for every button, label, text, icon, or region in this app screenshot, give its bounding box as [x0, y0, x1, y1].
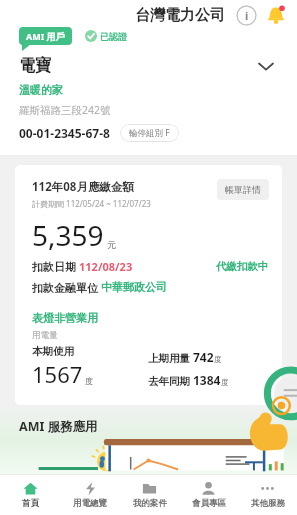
button[interactable]: 我的案件 [120, 475, 179, 515]
staticText: 溫暖的家 [19, 83, 63, 97]
staticText: AMI 服務應用 [19, 418, 98, 435]
button[interactable]: 帳單詳情 [225, 184, 261, 195]
staticText: 電寶 [19, 56, 51, 76]
staticText: 1384 [193, 372, 221, 388]
staticText: 計費期間 112/05/24 ~ 112/07/23 [32, 198, 151, 209]
staticText: 1567 [32, 359, 83, 389]
button[interactable]: 用電總覽 [60, 475, 120, 515]
button[interactable]: 首頁 [0, 475, 60, 515]
staticText: 中華郵政公司 [101, 280, 167, 294]
button[interactable]: 輪停組別 F [129, 127, 170, 139]
staticText: 112/08/23 [79, 259, 133, 274]
staticText: 度 [214, 355, 222, 364]
staticText: 我的案件 [133, 498, 167, 509]
staticText: 去年同期 [148, 374, 193, 388]
staticText: 扣款金融單位 [32, 280, 101, 295]
button[interactable]: Expand account [254, 54, 278, 78]
staticText: 度 [85, 376, 93, 386]
staticText: 用電量 [32, 330, 58, 341]
staticText: 本期使用 [32, 345, 74, 358]
staticText: 已認證 [100, 31, 127, 42]
staticText: 度 [221, 378, 229, 387]
button[interactable]: 其他服務 [238, 475, 297, 515]
staticText: 742 [193, 349, 214, 365]
staticText: 用電總覽 [73, 498, 107, 509]
button[interactable]: 會員專區 [179, 475, 238, 515]
staticText: 羅斯福路三段242號 [19, 103, 111, 117]
button[interactable]: AMI 用戶 [19, 27, 72, 45]
staticText: 代繳扣款中 [216, 260, 269, 273]
staticText: 扣款日期 [32, 259, 79, 274]
staticText: 00-01-2345-67-8 [19, 125, 110, 141]
staticText: 台灣電力公司 [135, 6, 225, 25]
staticText: 元 [107, 239, 116, 250]
staticText: AMI 用戶 [26, 30, 65, 42]
staticText: 首頁 [22, 498, 39, 509]
button[interactable]: Information [236, 5, 257, 26]
staticText: i [245, 8, 249, 23]
staticText: 112年08月應繳金額 [32, 179, 134, 195]
staticText: 會員專區 [192, 498, 226, 509]
staticText: 輪停組別 F [129, 127, 170, 139]
button[interactable]: Notifications [264, 3, 288, 27]
staticText: 帳單詳情 [225, 184, 261, 195]
button[interactable]: 112年08月應繳金額 [15, 165, 282, 405]
staticText: 其他服務 [251, 498, 285, 509]
staticText: 表燈非營業用 [32, 311, 98, 325]
staticText: 上期用量 [148, 351, 193, 365]
staticText: 5,359 [32, 216, 104, 254]
